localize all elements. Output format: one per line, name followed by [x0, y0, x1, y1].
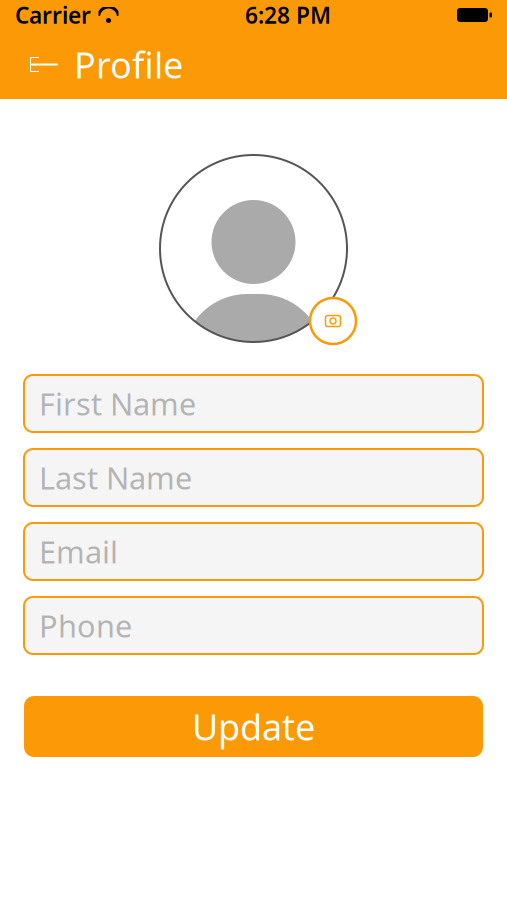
staticText: Profile — [74, 41, 183, 88]
staticText: Phone — [39, 605, 132, 646]
staticText: Carrier — [15, 0, 91, 30]
staticText: Last Name — [39, 457, 192, 498]
button[interactable]: Change profile photo — [310, 298, 356, 344]
button[interactable]: Phone — [24, 597, 483, 654]
staticText: 6:28 PM — [245, 0, 331, 30]
button[interactable]: Update — [24, 696, 483, 757]
button[interactable]: Email — [24, 523, 483, 580]
staticText: Update — [192, 703, 315, 750]
staticText: Email — [39, 531, 118, 572]
button[interactable]: First Name — [24, 375, 483, 432]
button[interactable]: Back — [18, 33, 70, 95]
staticText: First Name — [39, 383, 196, 424]
button[interactable]: Last Name — [24, 449, 483, 506]
